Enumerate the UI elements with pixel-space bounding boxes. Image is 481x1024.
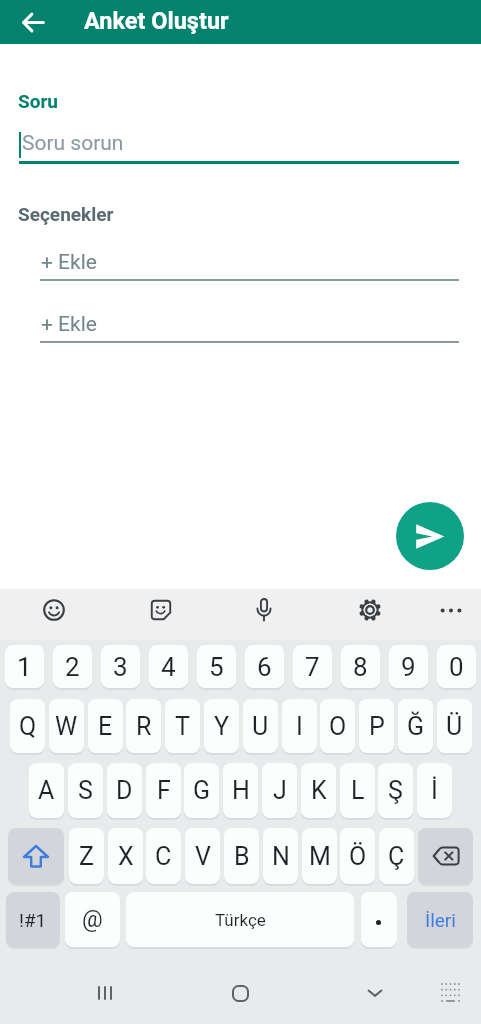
button[interactable]: @ (65, 892, 120, 947)
button[interactable] (11, 0, 55, 44)
staticText: A (38, 776, 55, 805)
staticText: F (157, 776, 171, 805)
button[interactable] (354, 972, 396, 1014)
button[interactable]: Q (10, 699, 45, 753)
staticText: T (175, 712, 190, 741)
staticText: Z (79, 842, 94, 871)
button[interactable]: İleri (407, 892, 473, 947)
staticText: 5 (209, 652, 224, 682)
staticText: C (155, 842, 172, 871)
staticText: !#1 (19, 909, 47, 931)
staticText: Seçenekler (18, 203, 114, 225)
staticText: L (351, 776, 365, 805)
button[interactable]: !#1 (6, 892, 60, 947)
staticText: Ğ (407, 712, 425, 741)
staticText: I (296, 712, 303, 741)
button[interactable] (138, 589, 183, 631)
button[interactable] (418, 828, 473, 884)
button[interactable]: X (108, 828, 143, 884)
button[interactable]: T (165, 699, 200, 753)
button[interactable]: I (282, 699, 317, 753)
staticText: D (116, 776, 133, 805)
button[interactable]: + Ekle (40, 312, 459, 343)
button[interactable]: Türkçe (126, 892, 354, 947)
button[interactable]: U (243, 699, 278, 753)
button[interactable] (31, 589, 76, 631)
button[interactable] (432, 974, 468, 1010)
button[interactable]: C (146, 828, 181, 884)
button[interactable]: Ü (437, 699, 472, 753)
button[interactable]: H (223, 763, 258, 818)
staticText: Ş (388, 776, 403, 805)
staticText: J (273, 776, 287, 805)
staticText: + Ekle (41, 250, 97, 275)
button[interactable]: 7 (293, 645, 332, 688)
button[interactable] (241, 589, 286, 631)
button[interactable]: Ş (378, 763, 413, 818)
button[interactable]: J (262, 763, 297, 818)
button[interactable]: E (88, 699, 123, 753)
button[interactable]: M (302, 828, 337, 884)
button[interactable] (428, 589, 473, 631)
staticText: R (136, 712, 152, 741)
staticText: Ö (349, 842, 367, 871)
staticText: Anket Oluştur (84, 7, 229, 35)
button[interactable]: 2 (53, 645, 92, 688)
staticText: + Ekle (41, 312, 97, 337)
button[interactable]: R (126, 699, 161, 753)
button[interactable]: K (301, 763, 336, 818)
button[interactable]: 4 (149, 645, 188, 688)
button[interactable]: V (185, 828, 220, 884)
button[interactable]: L (340, 763, 375, 818)
button[interactable] (361, 892, 397, 947)
button[interactable]: Soru sorun (19, 130, 459, 166)
button[interactable]: 1 (5, 645, 44, 688)
button[interactable]: N (263, 828, 298, 884)
button[interactable]: Y (204, 699, 239, 753)
staticText: X (118, 842, 134, 871)
button[interactable]: F (146, 763, 181, 818)
button[interactable]: Ç (379, 828, 414, 884)
button[interactable]: W (49, 699, 84, 753)
staticText: 7 (305, 652, 320, 682)
button[interactable] (219, 972, 261, 1014)
button[interactable]: B (224, 828, 259, 884)
staticText: Türkçe (215, 910, 266, 930)
button[interactable]: D (107, 763, 142, 818)
button[interactable]: 9 (389, 645, 428, 688)
staticText: V (195, 842, 211, 871)
button[interactable] (347, 589, 392, 631)
button[interactable]: G (184, 763, 219, 818)
button[interactable] (8, 828, 64, 884)
staticText: H (232, 776, 250, 805)
button[interactable]: P (359, 699, 394, 753)
staticText: M (309, 842, 331, 871)
button[interactable]: İ (417, 763, 452, 818)
button[interactable]: 6 (245, 645, 284, 688)
staticText: N (272, 842, 290, 871)
button[interactable]: 5 (197, 645, 236, 688)
button[interactable]: A (29, 763, 64, 818)
staticText: O (329, 712, 347, 741)
button[interactable]: Z (69, 828, 104, 884)
button[interactable]: 3 (101, 645, 140, 688)
staticText: İleri (425, 909, 456, 931)
button[interactable]: 0 (437, 645, 476, 688)
staticText: Ü (446, 712, 463, 741)
staticText: W (55, 712, 78, 741)
button[interactable]: S (68, 763, 103, 818)
button[interactable]: O (320, 699, 355, 753)
button[interactable]: + Ekle (40, 250, 459, 281)
staticText: Ç (388, 842, 405, 871)
staticText: @ (82, 906, 103, 933)
staticText: S (78, 776, 93, 805)
staticText: 3 (113, 652, 128, 682)
button[interactable]: 8 (341, 645, 380, 688)
button[interactable] (84, 972, 126, 1014)
button[interactable]: Ğ (398, 699, 433, 753)
staticText: Y (214, 712, 230, 741)
staticText: 6 (257, 652, 272, 682)
button[interactable]: Ö (340, 828, 375, 884)
button[interactable] (396, 502, 464, 570)
staticText: İ (431, 776, 438, 805)
